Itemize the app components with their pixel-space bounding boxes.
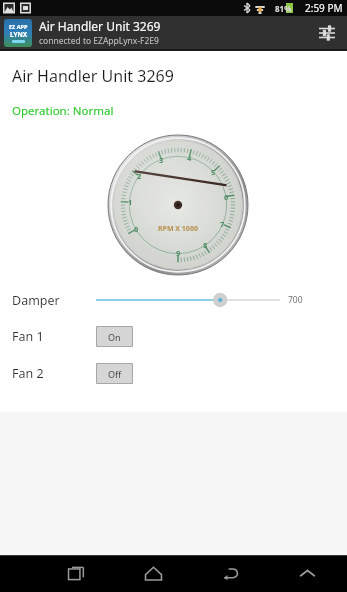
staticText: 3 <box>159 155 164 165</box>
staticText: On <box>108 331 121 343</box>
staticText: EZ APP <box>9 23 28 30</box>
button[interactable]: Off <box>97 364 132 383</box>
staticText: Air Handler Unit 3269 <box>12 65 174 87</box>
staticText: LYNX <box>10 30 28 39</box>
staticText: 5 <box>211 167 216 177</box>
staticText: 4 <box>187 153 192 163</box>
staticText: Off <box>108 368 122 380</box>
staticText: Air Handler Unit 3269 <box>39 18 161 34</box>
staticText: Fan 1 <box>12 328 96 345</box>
staticText: 700 <box>288 294 303 306</box>
staticText: 0 <box>134 224 139 234</box>
button[interactable]: Home <box>133 555 173 592</box>
button[interactable]: On <box>97 327 132 346</box>
button[interactable]: Settings <box>311 17 343 49</box>
staticText: 81% <box>275 3 292 14</box>
staticText: 1 <box>128 197 133 207</box>
staticText: 7 <box>220 219 225 229</box>
staticText: 8 <box>203 240 208 250</box>
button[interactable]: Recent apps <box>56 555 96 592</box>
staticText: RPM X 1000 <box>158 224 198 234</box>
button[interactable]: Back <box>210 555 250 592</box>
staticText: 2 <box>137 171 142 181</box>
button[interactable]: Hide navigation <box>287 555 327 592</box>
staticText: Fan 2 <box>12 365 96 382</box>
staticText: 9 <box>176 248 181 258</box>
staticText: Operation: Normal <box>12 103 114 119</box>
staticText: connected to EZAppLynx-F2E9 <box>39 35 159 47</box>
staticText: 6 <box>224 192 229 202</box>
staticText: Damper <box>12 292 96 309</box>
staticText: 2:59 PM <box>305 1 343 15</box>
button[interactable] <box>96 287 280 313</box>
